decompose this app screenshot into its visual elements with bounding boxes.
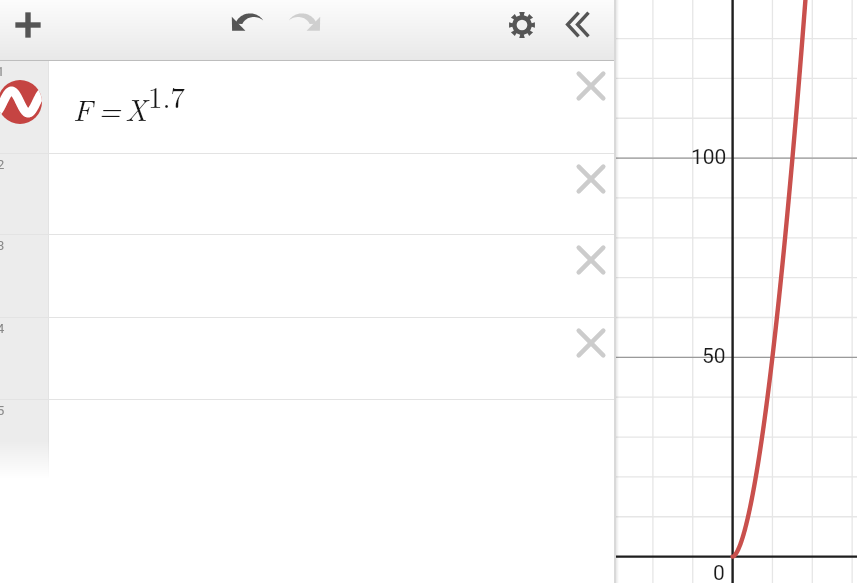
staticText: 1.7 <box>148 75 186 116</box>
button[interactable]: 1 <box>0 61 615 154</box>
button[interactable]: Undo <box>225 0 269 44</box>
staticText: 5 <box>0 403 5 418</box>
staticText: 2 <box>0 157 5 172</box>
staticText: X <box>125 87 148 129</box>
button[interactable]: 3 <box>0 235 615 318</box>
staticText: 1 <box>0 64 5 79</box>
button[interactable]: Delete expression 3 <box>569 238 613 282</box>
button[interactable]: Delete expression 4 <box>569 321 613 365</box>
staticText: 0 <box>713 561 725 583</box>
button[interactable]: Collapse panel <box>556 3 600 47</box>
button[interactable]: 5 <box>0 400 615 479</box>
button[interactable]: 2 <box>0 154 615 235</box>
staticText: F <box>73 87 93 129</box>
button[interactable]: Delete expression 2 <box>569 157 613 201</box>
button[interactable]: Delete expression 1 <box>569 64 613 108</box>
staticText: 3 <box>0 238 5 253</box>
button[interactable]: Redo <box>283 0 327 44</box>
button[interactable]: Settings <box>500 3 544 47</box>
staticText: 50 <box>702 344 726 369</box>
staticText: 4 <box>0 321 5 336</box>
staticText: 100 <box>691 145 727 170</box>
button[interactable]: Add expression <box>6 3 50 47</box>
staticText: = <box>98 87 122 129</box>
button[interactable]: 4 <box>0 318 615 400</box>
